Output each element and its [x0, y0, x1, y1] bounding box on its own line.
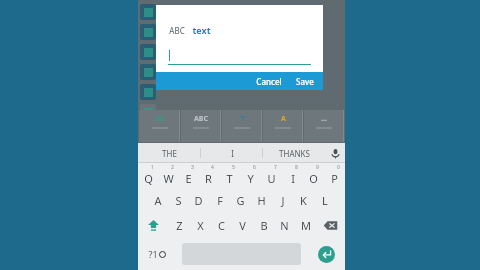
button[interactable]: T	[222, 110, 262, 142]
staticText: ABC	[169, 25, 185, 36]
staticText: X	[197, 218, 204, 233]
staticText: F	[217, 193, 223, 208]
button[interactable]: Voice input	[325, 143, 345, 163]
staticText: THE	[162, 148, 177, 159]
button[interactable]: M	[295, 213, 316, 238]
button[interactable]: Z	[168, 213, 190, 238]
staticText: Q	[144, 171, 153, 186]
staticText: G	[236, 193, 245, 208]
staticText: 7	[274, 164, 277, 171]
button[interactable]: ...	[304, 110, 344, 142]
staticText: D	[194, 193, 203, 208]
button[interactable]	[140, 4, 156, 20]
staticText: 8	[295, 164, 298, 171]
staticText: 6	[253, 164, 256, 171]
button[interactable]: Cancel	[256, 72, 282, 90]
staticText: ID	[156, 114, 164, 124]
button[interactable]	[140, 44, 156, 60]
button[interactable]: A	[263, 110, 303, 142]
button[interactable]	[140, 64, 156, 80]
staticText: C	[218, 218, 225, 233]
staticText: S	[175, 193, 182, 208]
button[interactable]: H	[251, 188, 272, 213]
button[interactable]: N	[274, 213, 295, 238]
staticText: 5	[232, 164, 235, 171]
staticText: L	[322, 193, 328, 208]
staticText: Save	[296, 76, 314, 87]
button[interactable]: F	[209, 188, 230, 213]
button[interactable]	[140, 84, 156, 100]
staticText: T	[226, 171, 233, 186]
button[interactable]: 4	[198, 163, 219, 188]
staticText: Y	[247, 171, 254, 186]
button[interactable]: ABC	[181, 110, 221, 142]
staticText: N	[280, 218, 289, 233]
staticText: A	[154, 193, 162, 208]
button[interactable]: ?1	[138, 238, 176, 270]
button[interactable]: G	[230, 188, 251, 213]
button[interactable]: THE	[138, 143, 201, 163]
button[interactable]: ID	[139, 110, 180, 142]
staticText: 3	[191, 164, 194, 171]
staticText: ?1	[148, 248, 158, 260]
staticText: H	[257, 193, 266, 208]
staticText: T	[240, 114, 245, 124]
staticText: M	[301, 218, 311, 233]
button[interactable]: X	[190, 213, 211, 238]
staticText: K	[300, 193, 307, 208]
button[interactable]: I	[201, 143, 263, 163]
staticText: 2	[171, 164, 174, 171]
staticText: E	[185, 171, 192, 186]
button[interactable]: THANKS	[263, 143, 325, 163]
staticText: ABC	[194, 114, 208, 124]
button[interactable]: S	[168, 188, 188, 213]
staticText: Z	[176, 218, 183, 233]
button[interactable]: L	[314, 188, 335, 213]
staticText: P	[331, 171, 338, 186]
button[interactable]: 6	[240, 163, 261, 188]
button[interactable]: V	[232, 213, 253, 238]
button[interactable]	[140, 104, 156, 120]
button[interactable]: 7	[261, 163, 282, 188]
staticText: 0	[337, 164, 340, 171]
staticText: 1	[151, 164, 154, 171]
button[interactable]: A	[148, 188, 168, 213]
button[interactable]: Enter	[307, 238, 345, 270]
button[interactable]	[140, 24, 156, 40]
staticText: ...	[321, 114, 327, 124]
staticText: W	[163, 171, 174, 186]
button[interactable]: 2	[158, 163, 178, 188]
button[interactable]: Shift	[138, 213, 168, 238]
staticText: text	[192, 24, 211, 36]
button[interactable]: 3	[178, 163, 198, 188]
button[interactable]: Backspace	[316, 213, 345, 238]
staticText: I	[291, 171, 295, 186]
button[interactable]: J	[272, 188, 293, 213]
button[interactable]	[168, 48, 311, 65]
staticText: I	[231, 148, 234, 159]
button[interactable]: Save	[296, 72, 314, 90]
staticText: Cancel	[256, 76, 282, 87]
button[interactable]: C	[211, 213, 232, 238]
staticText: O	[309, 171, 318, 186]
button[interactable]: 8	[282, 163, 303, 188]
staticText: 4	[211, 164, 214, 171]
button[interactable]: 9	[303, 163, 324, 188]
staticText: THANKS	[279, 148, 310, 159]
staticText: U	[267, 171, 276, 186]
button[interactable]: 1	[138, 163, 158, 188]
button[interactable]: B	[253, 213, 274, 238]
button[interactable]: K	[293, 188, 314, 213]
button[interactable]: D	[188, 188, 209, 213]
button[interactable]: 0	[324, 163, 345, 188]
staticText: R	[205, 171, 212, 186]
staticText: B	[260, 218, 268, 233]
staticText: J	[281, 193, 285, 208]
staticText: 9	[316, 164, 319, 171]
staticText: V	[239, 218, 246, 233]
button[interactable]: 5	[219, 163, 240, 188]
staticText: A	[281, 114, 286, 124]
